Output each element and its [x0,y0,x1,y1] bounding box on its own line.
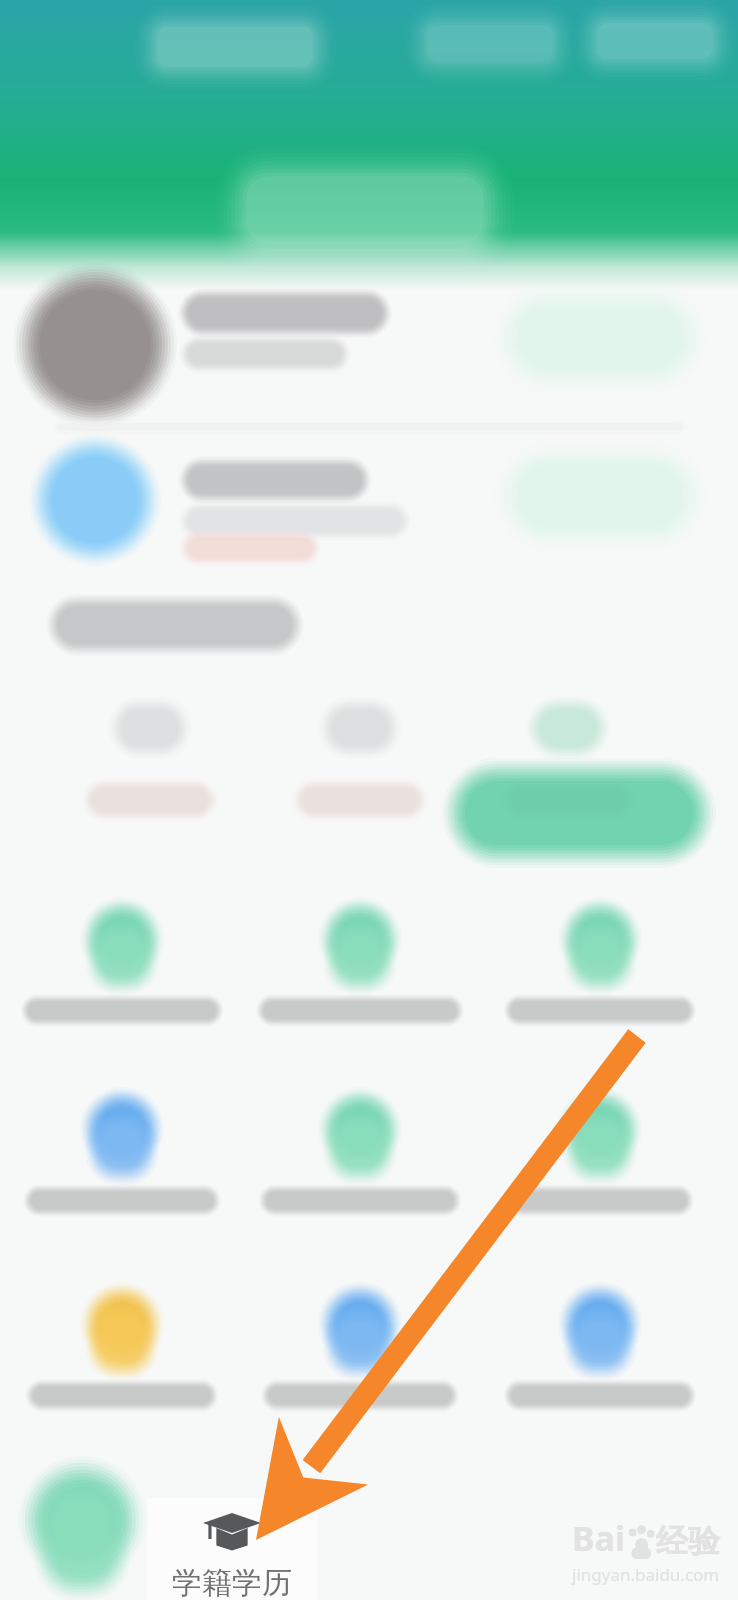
staticText: 经验 [656,1521,720,1561]
staticText: 学籍学历 [172,1564,292,1600]
staticText: jingyan.baidu.com [572,1563,720,1586]
staticText: Bai [572,1515,626,1561]
button[interactable]: 学籍学历 [147,1498,317,1600]
